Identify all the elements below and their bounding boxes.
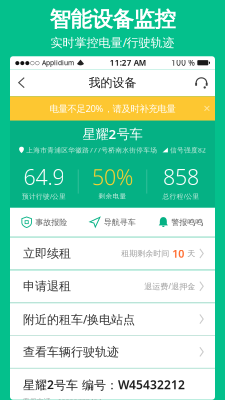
staticText: 64.9 [23,162,64,191]
staticText: 星耀2号车 编号：W45432212 [23,377,185,393]
staticText: 警报鸣鸣 [171,217,203,227]
staticText: 10 [169,246,187,261]
staticText: ✕ [203,103,211,114]
staticText: 858 [163,162,199,191]
staticText: 100 % [171,57,195,68]
staticText: Applidium [40,58,74,67]
button[interactable]: 立即续租 [10,237,215,269]
staticText: ●●● [15,60,30,66]
button[interactable]: 导航寻车 [78,208,147,237]
staticText: 上海市青浦区华徽路777号桥南水街停车场 [24,146,157,154]
button[interactable]: Dismiss warning [199,96,215,120]
staticText: 50% [92,163,133,191]
staticText: 我的设备 [88,75,136,90]
button[interactable]: Customer support [188,69,215,96]
staticText: 智能设备监控 [49,6,175,32]
staticText: 客服电话：15555789454 [23,397,102,400]
staticText: 天 [187,249,195,258]
staticText: 事故报险 [35,217,67,227]
staticText: 剩余电量 [98,192,126,200]
button[interactable]: 申请退租 [10,270,215,302]
staticText: 电量不足20%，请及时补充电量 [49,102,175,115]
staticText: 查看车辆行驶轨迹 [23,345,119,359]
staticText: ○○ [30,60,40,66]
staticText: 立即续租 [23,246,71,261]
staticText: 申请退租 [23,279,71,294]
staticText: 租期剩余时间 [121,249,169,258]
staticText: 总行程/公里 [163,192,200,201]
staticText: 附近的租车/换电站点 [23,311,135,327]
staticText: 导航寻车 [104,217,136,227]
button[interactable]: 事故报险 [10,208,78,237]
button[interactable]: 查看车辆行驶轨迹 [10,336,215,368]
staticText: 信号强度82 [168,146,206,154]
button[interactable]: Back [10,69,33,96]
staticText: 实时掌控电量/行驶轨迹 [50,34,174,50]
button[interactable]: 附近的租车/换电站点 [10,303,215,335]
staticText: 11:27 AM [110,57,146,68]
staticText: 星耀2号车 [82,125,142,143]
button[interactable]: 警报鸣鸣 [147,208,215,237]
staticText: 退运费/退押金 [144,281,195,292]
staticText: 预计行驶/公里 [22,192,66,201]
